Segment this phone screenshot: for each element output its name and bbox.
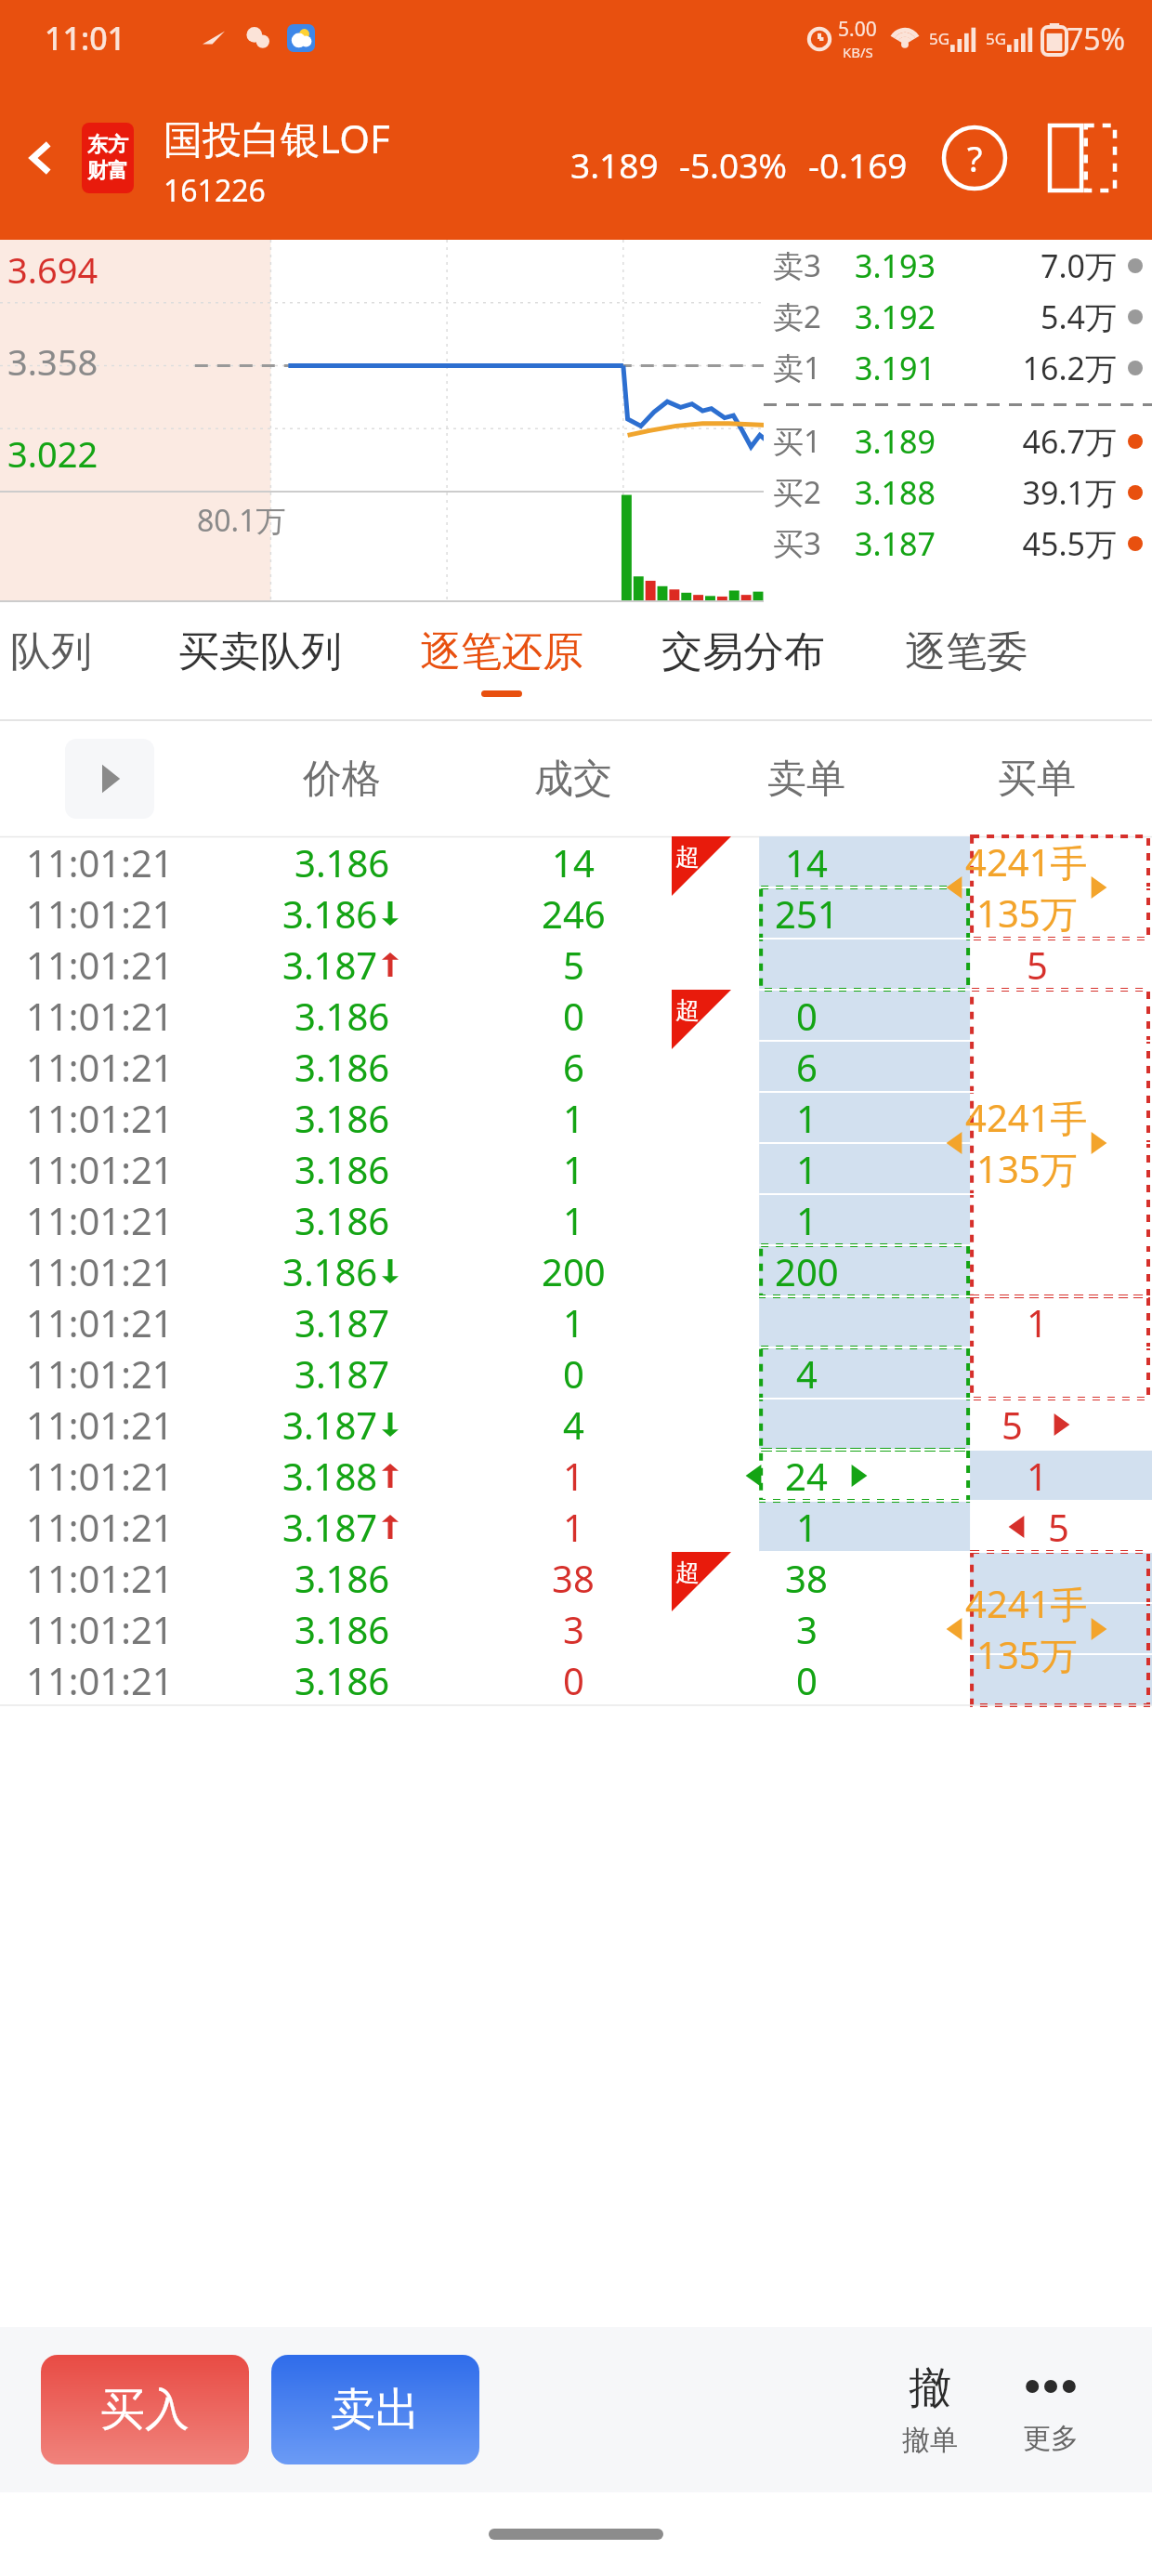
staticText: 5.4万 bbox=[936, 296, 1117, 338]
button[interactable]: 11:01:21 bbox=[0, 1296, 1152, 1347]
staticText: 11:01:21 bbox=[26, 1144, 174, 1194]
staticText: 东方 bbox=[87, 132, 128, 158]
staticText: 45.5万 bbox=[936, 522, 1117, 565]
button[interactable]: 买1 bbox=[764, 415, 1152, 467]
button[interactable]: 买入 bbox=[41, 2355, 249, 2464]
staticText: 1 bbox=[563, 1502, 584, 1552]
staticText: 买入 bbox=[100, 2382, 190, 2438]
staticText: 3.358 bbox=[7, 337, 98, 386]
staticText: 撤单 bbox=[902, 2423, 958, 2458]
staticText: 买1 bbox=[773, 420, 821, 462]
staticText: 246 bbox=[542, 888, 606, 939]
button[interactable]: 11:01:21 bbox=[0, 1041, 1152, 1092]
staticText: 3.186 bbox=[282, 888, 378, 939]
button[interactable]: 11:01:21 bbox=[0, 1399, 1152, 1450]
button[interactable]: 11:01:21 bbox=[0, 939, 1152, 990]
staticText: 3.186 bbox=[295, 1655, 390, 1705]
staticText: 超 bbox=[675, 1557, 700, 1588]
staticText: 3.186 bbox=[295, 1195, 390, 1245]
button[interactable]: Help bbox=[935, 118, 1015, 198]
staticText: 5 bbox=[563, 940, 584, 990]
button[interactable]: 11:01:21 bbox=[0, 1654, 1152, 1705]
staticText: 3.187 bbox=[295, 1348, 390, 1399]
staticText: 3.186 bbox=[295, 1144, 390, 1194]
button[interactable]: 11:01:21 bbox=[0, 1143, 1152, 1194]
button[interactable]: 卖出 bbox=[271, 2355, 479, 2464]
button[interactable]: 11:01:21 bbox=[0, 1501, 1152, 1552]
staticText: 3.187 bbox=[282, 940, 378, 990]
staticText: 5.00 bbox=[838, 16, 877, 43]
button[interactable]: 11:01:21 bbox=[0, 1552, 1152, 1603]
staticText: 1 bbox=[563, 1144, 584, 1194]
button[interactable]: 11:01:21 bbox=[0, 887, 1152, 939]
staticText: -0.169 bbox=[808, 141, 908, 188]
button[interactable]: Layout bbox=[1041, 116, 1124, 200]
button[interactable]: Back bbox=[9, 125, 74, 191]
button[interactable]: 卖3 bbox=[764, 240, 1152, 291]
staticText: 买卖队列 bbox=[178, 626, 342, 677]
button[interactable]: 11:01:21 bbox=[0, 836, 1152, 887]
button[interactable]: 逐笔还原 bbox=[381, 602, 622, 721]
staticText: 3.187 bbox=[282, 1400, 378, 1450]
staticText: 11:01:21 bbox=[26, 1042, 174, 1092]
staticText: 10.01% bbox=[1025, 245, 1145, 294]
staticText: 交易分布 bbox=[661, 626, 825, 677]
button[interactable]: 撤 bbox=[870, 2327, 990, 2492]
staticText: 1 bbox=[1027, 1297, 1048, 1347]
staticText: KB/S bbox=[843, 43, 873, 61]
staticText: 0 bbox=[796, 991, 818, 1041]
staticText: 75% bbox=[1067, 19, 1126, 59]
button[interactable]: 11:01:21 bbox=[0, 990, 1152, 1041]
button[interactable]: 卖1 bbox=[764, 342, 1152, 393]
staticText: 3.192 bbox=[855, 296, 936, 338]
staticText: 1 bbox=[796, 1502, 818, 1552]
button[interactable]: 买3 bbox=[764, 518, 1152, 569]
staticText: 11:01:21 bbox=[26, 1502, 174, 1552]
button[interactable]: 11:01:21 bbox=[0, 1347, 1152, 1399]
staticText: 买3 bbox=[773, 522, 821, 564]
staticText: 3.186 bbox=[282, 1246, 378, 1296]
staticText: 3.186 bbox=[295, 837, 390, 887]
staticText: 4241手 bbox=[965, 1092, 1088, 1143]
staticText: 买2 bbox=[773, 471, 821, 513]
staticText: 4241手 bbox=[965, 1578, 1088, 1629]
staticText: 国投白银LOF bbox=[164, 112, 390, 164]
staticText: -5.03% bbox=[679, 141, 788, 188]
button[interactable]: 11:01:21 bbox=[0, 1092, 1152, 1143]
staticText: 135万 bbox=[976, 887, 1078, 939]
button[interactable]: 交易分布 bbox=[622, 602, 864, 721]
staticText: 39.1万 bbox=[936, 471, 1117, 514]
button[interactable]: 11:01:21 bbox=[0, 1245, 1152, 1296]
staticText: 11:01:21 bbox=[26, 1348, 174, 1399]
button[interactable]: 11:01:21 bbox=[0, 1194, 1152, 1245]
staticText: 251 bbox=[775, 888, 839, 939]
button[interactable]: 逐笔委 bbox=[864, 602, 1068, 721]
staticText: 16.2万 bbox=[936, 347, 1117, 389]
staticText: 11:01:21 bbox=[26, 1093, 174, 1143]
staticText: 80.1万 bbox=[197, 500, 286, 541]
staticText: 11:01:21 bbox=[26, 940, 174, 990]
button[interactable]: More bbox=[990, 2327, 1111, 2492]
button[interactable]: 卖2 bbox=[764, 291, 1152, 342]
staticText: 11:01:21 bbox=[26, 837, 174, 887]
staticText: 撤 bbox=[909, 2361, 951, 2415]
staticText: 0 bbox=[563, 1348, 584, 1399]
staticText: 卖3 bbox=[773, 244, 821, 286]
staticText: 4 bbox=[796, 1348, 818, 1399]
staticText: 46.7万 bbox=[936, 420, 1117, 463]
staticText: 成交 bbox=[534, 755, 612, 804]
staticText: 价格 bbox=[303, 755, 381, 804]
staticText: 0 bbox=[563, 991, 584, 1041]
button[interactable]: 11:01:21 bbox=[0, 1603, 1152, 1654]
staticText: 队列 bbox=[10, 626, 92, 677]
staticText: 3.188 bbox=[855, 471, 936, 514]
staticText: 5 bbox=[1027, 940, 1048, 990]
staticText: 11:01:21 bbox=[26, 1655, 174, 1705]
button[interactable]: 买2 bbox=[764, 467, 1152, 518]
button[interactable]: 买卖队列 bbox=[139, 602, 381, 721]
staticText: 38 bbox=[785, 1553, 828, 1603]
button[interactable]: 11:01:21 bbox=[0, 1450, 1152, 1501]
button[interactable]: 队列 bbox=[0, 602, 121, 721]
staticText: 11:01:21 bbox=[26, 1451, 174, 1501]
button[interactable]: Play bbox=[65, 739, 154, 819]
